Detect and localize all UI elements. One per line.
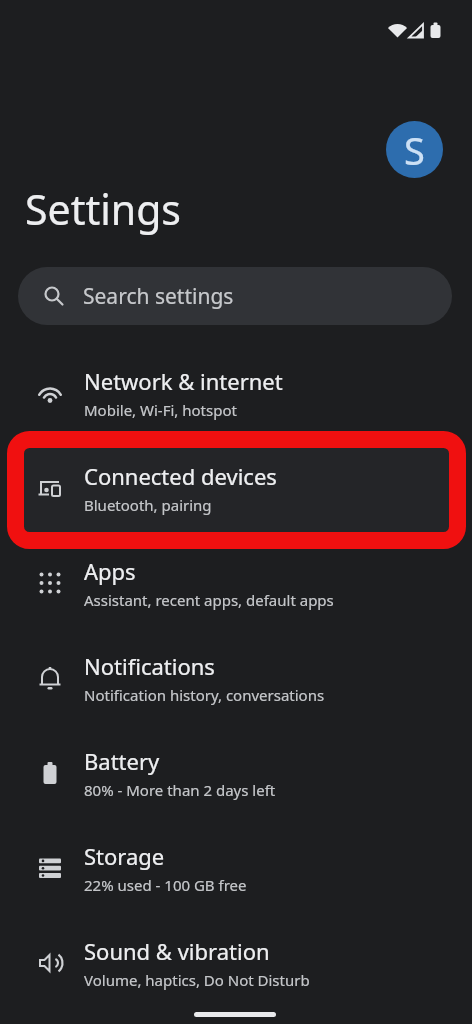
staticText: 80% - More than 2 days left [84, 780, 276, 800]
staticText: Connected devices [84, 461, 277, 491]
staticText: Search settings [83, 282, 234, 311]
button[interactable]: Apps [0, 535, 472, 630]
button[interactable]: Network & internet [0, 345, 472, 440]
staticText: Volume, haptics, Do Not Disturb [84, 970, 310, 990]
button[interactable]: Connected devices [0, 440, 472, 535]
staticText: Assistant, recent apps, default apps [84, 590, 334, 610]
button[interactable]: Storage [0, 820, 472, 915]
staticText: Battery [84, 746, 160, 776]
button[interactable]: Search settings [18, 267, 452, 325]
staticText: Mobile, Wi-Fi, hotspot [84, 400, 237, 420]
button[interactable]: Sound & vibration [0, 915, 472, 1010]
staticText: Settings [25, 181, 182, 237]
staticText: Sound & vibration [84, 936, 270, 966]
button[interactable]: Battery [0, 725, 472, 820]
staticText: Network & internet [84, 366, 283, 396]
button[interactable]: S [386, 121, 443, 178]
staticText: Storage [84, 841, 165, 871]
staticText: Notification history, conversations [84, 685, 325, 705]
staticText: S [404, 124, 425, 176]
staticText: Notifications [84, 651, 215, 681]
staticText: Apps [84, 556, 136, 586]
staticText: Bluetooth, pairing [84, 495, 212, 515]
button[interactable]: Notifications [0, 630, 472, 725]
staticText: 22% used - 100 GB free [84, 875, 247, 895]
